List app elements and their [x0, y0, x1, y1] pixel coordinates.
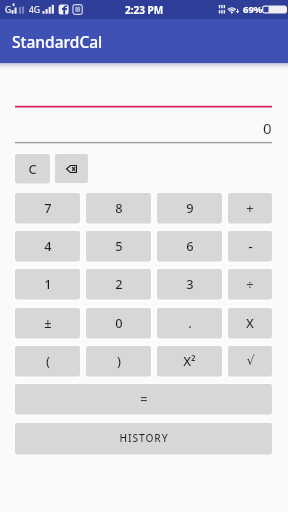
staticText: 9	[186, 199, 194, 216]
staticText: HISTORY	[119, 431, 169, 445]
button[interactable]: )	[86, 346, 151, 376]
staticText: √	[246, 353, 255, 368]
button[interactable]: -	[228, 231, 272, 261]
staticText: 7	[44, 199, 52, 216]
button[interactable]: HISTORY	[15, 423, 272, 454]
staticText: +	[246, 199, 254, 216]
button[interactable]: 4	[15, 231, 80, 261]
button[interactable]: 1	[15, 269, 80, 299]
staticText: ÷	[246, 275, 254, 292]
button[interactable]: 6	[157, 231, 222, 261]
staticText: 69%	[243, 3, 263, 16]
button[interactable]: .	[157, 308, 222, 338]
button[interactable]: (	[15, 346, 80, 376]
button[interactable]: ±	[15, 308, 80, 338]
staticText: StandardCal	[12, 31, 103, 52]
button[interactable]: 0	[86, 308, 151, 338]
staticText: 3	[186, 275, 194, 292]
staticText: -	[248, 237, 253, 254]
staticText: C	[28, 160, 37, 177]
staticText: 0	[263, 118, 272, 138]
button[interactable]: 7	[15, 193, 80, 223]
button[interactable]: 9	[157, 193, 222, 223]
button[interactable]: 8	[86, 193, 151, 223]
staticText: 0	[115, 314, 123, 331]
button[interactable]: 3	[157, 269, 222, 299]
staticText: )	[117, 352, 121, 369]
button[interactable]: X²	[157, 346, 222, 376]
staticText: ±	[44, 314, 52, 331]
staticText: .	[188, 314, 192, 331]
staticText: 4	[44, 237, 52, 254]
button[interactable]: ÷	[228, 269, 272, 299]
staticText: 2:23 PM	[125, 3, 164, 17]
button[interactable]: 5	[86, 231, 151, 261]
button[interactable]: √	[228, 346, 272, 376]
staticText: 6	[186, 237, 194, 254]
staticText: 8	[115, 199, 123, 216]
staticText: =	[140, 390, 148, 407]
staticText: 5	[115, 237, 123, 254]
button[interactable]: =	[15, 384, 272, 414]
staticText: 1	[44, 275, 52, 292]
button[interactable]: C	[15, 154, 50, 183]
staticText: 4G	[29, 4, 41, 16]
button[interactable]: Backspace	[55, 154, 88, 183]
staticText: X²	[183, 352, 196, 369]
staticText: X	[246, 314, 254, 331]
button[interactable]: X	[228, 308, 272, 338]
button[interactable]: +	[228, 193, 272, 223]
staticText: G	[5, 4, 12, 16]
button[interactable]: 2	[86, 269, 151, 299]
staticText: (	[46, 352, 50, 369]
staticText: 2	[115, 275, 123, 292]
